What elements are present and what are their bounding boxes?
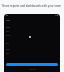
staticText: Share reports and dashboards with your t…	[2, 4, 62, 8]
button[interactable]	[4, 53, 60, 54]
button[interactable]	[4, 43, 60, 44]
button[interactable]	[4, 35, 60, 36]
button[interactable]	[6, 63, 58, 66]
button[interactable]	[4, 49, 60, 50]
button[interactable]	[4, 31, 60, 32]
button[interactable]	[4, 27, 60, 28]
